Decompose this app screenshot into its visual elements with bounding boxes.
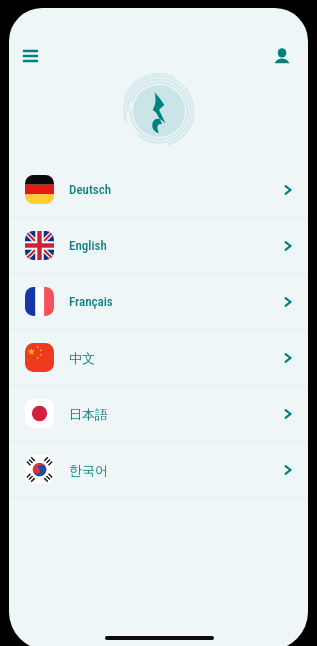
button[interactable]: English (9, 218, 308, 273)
button[interactable]: 日本語 (9, 386, 308, 441)
staticText: 한국어 (69, 462, 108, 478)
button[interactable]: Deutsch (9, 162, 308, 217)
staticText: 日本語 (69, 406, 108, 422)
button[interactable]: Menu (15, 41, 45, 71)
staticText: English (69, 238, 107, 253)
button[interactable]: Profile (267, 40, 297, 70)
button[interactable]: 한국어 (9, 442, 308, 497)
button[interactable]: 中文 (9, 330, 308, 385)
button[interactable]: Français (9, 274, 308, 329)
staticText: Français (69, 294, 113, 309)
staticText: Deutsch (69, 182, 112, 197)
staticText: 中文 (69, 350, 95, 366)
